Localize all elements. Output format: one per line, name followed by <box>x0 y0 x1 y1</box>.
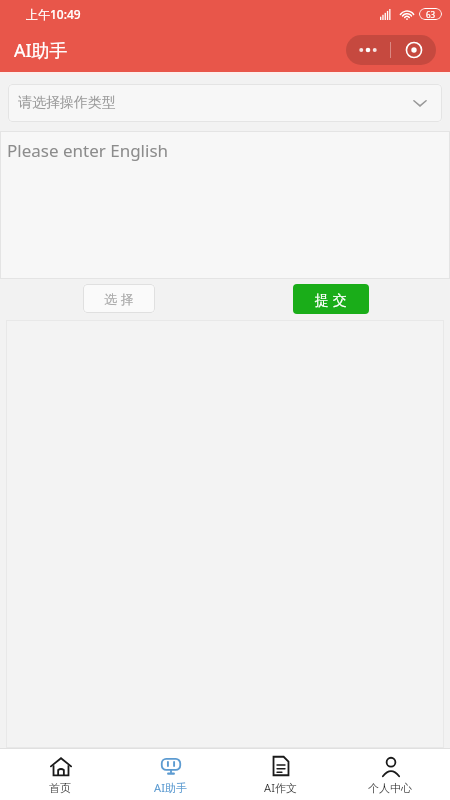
staticText: 提 交 <box>315 290 347 309</box>
staticText: AI作文 <box>264 780 297 795</box>
staticText: AI助手 <box>14 38 68 63</box>
button[interactable]: 请选择操作类型 <box>8 84 442 122</box>
button[interactable]: 首页 <box>10 749 110 800</box>
staticText: AI助手 <box>154 780 187 795</box>
staticText: 首页 <box>49 781 71 795</box>
button[interactable]: Please enter English <box>0 131 450 279</box>
staticText: Please enter English <box>7 139 169 162</box>
button[interactable]: 提 交 <box>293 284 369 314</box>
button[interactable]: AI助手 <box>120 749 220 800</box>
button[interactable]: 选 择 <box>83 284 155 313</box>
staticText: 请选择操作类型 <box>18 94 116 112</box>
button[interactable]: Close <box>391 35 436 65</box>
staticText: 上午10:49 <box>26 6 81 22</box>
button[interactable]: AI作文 <box>230 749 330 800</box>
staticText: 选 择 <box>104 290 134 308</box>
staticText: 个人中心 <box>368 781 412 795</box>
button[interactable]: 个人中心 <box>340 749 440 800</box>
staticText: 63 <box>426 9 436 20</box>
button[interactable]: More <box>346 35 390 65</box>
